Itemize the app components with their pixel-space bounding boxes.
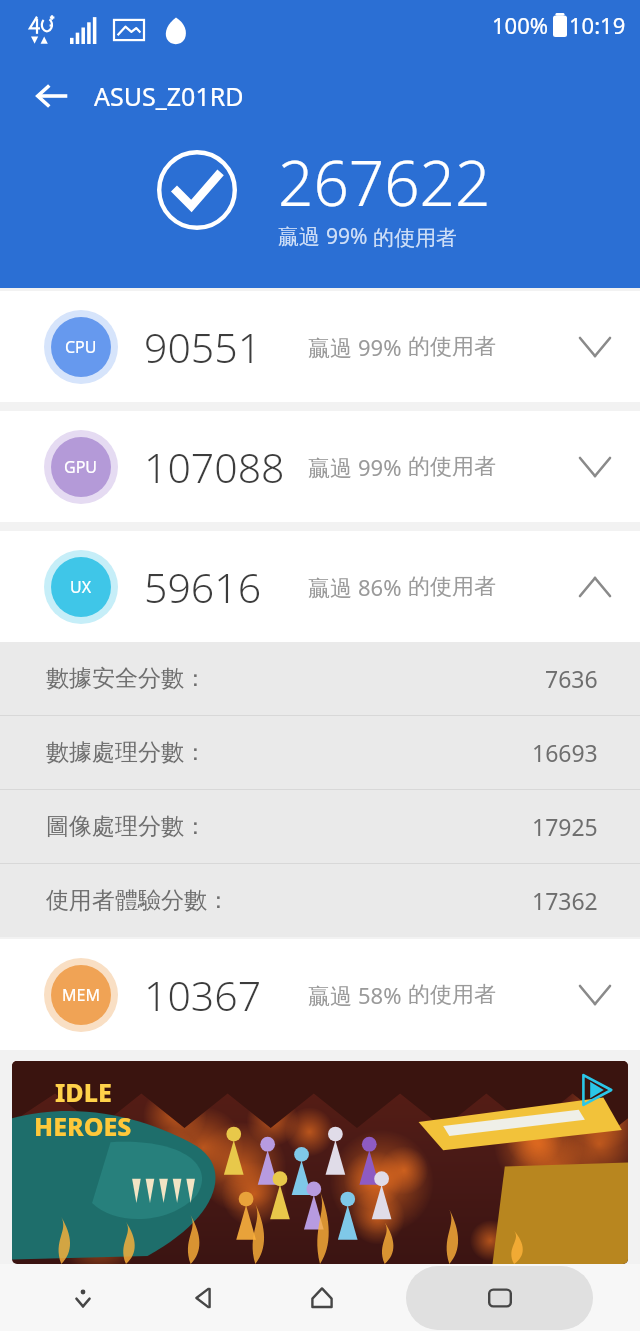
button[interactable]: MEM — [0, 939, 640, 1050]
staticText: HEROES — [34, 1109, 132, 1143]
button[interactable]: Collapse — [564, 556, 626, 618]
staticText: 267622 — [278, 140, 491, 224]
button[interactable]: 圖像處理分數： — [0, 790, 640, 863]
staticText: 數據安全分數： — [46, 664, 207, 693]
button[interactable]: 使用者體驗分數： — [0, 864, 640, 937]
staticText: 的使用者 — [408, 333, 496, 361]
staticText: 17362 — [532, 885, 598, 916]
staticText: 贏過 — [308, 980, 358, 1010]
button[interactable]: CPU — [0, 291, 640, 402]
staticText: 的使用者 — [408, 453, 496, 481]
staticText: 的使用者 — [373, 225, 457, 251]
button[interactable]: Hide navigation bar — [47, 1264, 119, 1331]
button[interactable]: 數據處理分數： — [0, 716, 640, 789]
staticText: 10367 — [144, 967, 262, 1023]
staticText: 107088 — [144, 439, 285, 495]
staticText: 贏過 — [278, 222, 326, 251]
staticText: CPU — [65, 336, 97, 358]
staticText: 17925 — [532, 811, 598, 842]
button[interactable]: Home — [286, 1264, 358, 1331]
staticText: 99% — [358, 332, 408, 362]
button[interactable]: GPU — [0, 411, 640, 522]
staticText: 圖像處理分數： — [46, 812, 207, 841]
button[interactable]: 數據安全分數： — [0, 642, 640, 715]
staticText: 90551 — [144, 319, 262, 375]
staticText: 數據處理分數： — [46, 738, 207, 767]
button[interactable]: Recent apps — [406, 1266, 593, 1330]
staticText: 的使用者 — [408, 981, 496, 1009]
button[interactable]: Back — [167, 1264, 239, 1331]
staticText: 10:19 — [569, 10, 626, 40]
staticText: 贏過 — [308, 332, 358, 362]
staticText: UX — [70, 576, 92, 598]
button[interactable]: Back — [24, 68, 80, 124]
staticText: 的使用者 — [408, 573, 496, 601]
button[interactable]: Idle Heroes advertisement — [12, 1061, 628, 1264]
staticText: 使用者體驗分數： — [46, 886, 230, 915]
staticText: IDLE — [55, 1075, 112, 1109]
staticText: 86% — [358, 572, 408, 602]
staticText: 99% — [358, 452, 408, 482]
staticText: 100% — [492, 10, 549, 40]
staticText: GPU — [64, 456, 98, 478]
staticText: 贏過 — [308, 452, 358, 482]
staticText: MEM — [62, 984, 100, 1006]
button[interactable]: Expand — [564, 316, 626, 378]
staticText: 7636 — [545, 663, 598, 694]
button[interactable]: UX — [0, 531, 640, 642]
button[interactable]: Expand — [564, 964, 626, 1026]
staticText: 贏過 — [308, 572, 358, 602]
staticText: 59616 — [144, 559, 262, 615]
staticText: 58% — [358, 980, 408, 1010]
button[interactable]: Expand — [564, 436, 626, 498]
staticText: ASUS_Z01RD — [94, 79, 244, 113]
staticText: 16693 — [532, 737, 598, 768]
staticText: 99% — [326, 222, 373, 251]
